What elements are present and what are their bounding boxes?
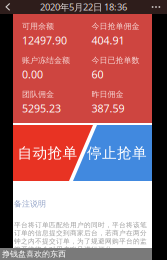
staticText: 备注说明: [14, 199, 46, 209]
staticText: 今日抢单佣金: [91, 21, 139, 31]
button[interactable]: Back: [0, 0, 16, 14]
staticText: 387.59: [91, 101, 124, 115]
staticText: 404.91: [91, 33, 124, 47]
button[interactable]: 停止抢单: [82, 125, 152, 181]
staticText: 团队佣金: [22, 89, 54, 99]
staticText: 12497.90: [22, 33, 67, 47]
staticText: 今日已抢单数: [91, 55, 139, 65]
staticText: 平台将订单匹配给用户的同时，平台将该笔订单的信息提交到商家后台，若商户在两分钟之…: [14, 221, 147, 254]
staticText: 停止抢单: [87, 144, 147, 162]
staticText: 可用余额: [22, 21, 54, 31]
staticText: 账户冻结金额: [22, 55, 70, 65]
button[interactable]: 自动抢单: [13, 125, 82, 181]
staticText: 2020年5月22日 18:36: [40, 1, 127, 13]
staticText: 自动抢单: [17, 144, 77, 162]
staticText: 0.00: [22, 67, 43, 81]
staticText: 60: [91, 67, 103, 81]
staticText: 昨日佣金: [91, 89, 123, 99]
button[interactable]: More: [145, 0, 167, 14]
staticText: 5295.23: [22, 101, 61, 115]
staticText: 挣钱盘喜欢的东西: [2, 249, 66, 259]
